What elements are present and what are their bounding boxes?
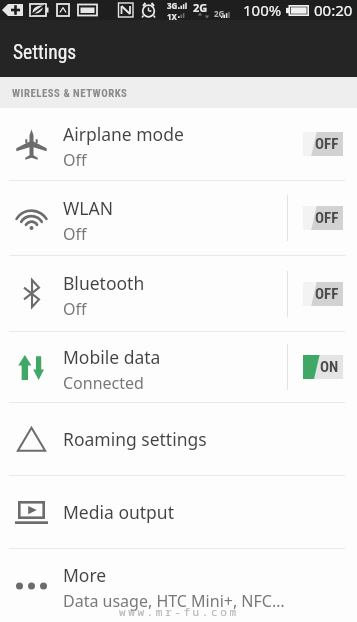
staticText: More bbox=[63, 563, 107, 587]
button[interactable]: Bluetooth bbox=[0, 256, 357, 331]
button[interactable]: Airplane mode bbox=[0, 108, 357, 180]
staticText: WLAN bbox=[63, 196, 113, 220]
staticText: Mobile data bbox=[63, 345, 161, 369]
button[interactable]: WLAN off bbox=[303, 206, 343, 230]
staticText: 00:20 bbox=[314, 0, 353, 20]
button[interactable]: Roaming settings bbox=[0, 403, 357, 475]
staticText: Bluetooth bbox=[63, 271, 145, 295]
button[interactable]: Mobile data on bbox=[303, 355, 343, 379]
button[interactable]: Airplane mode off bbox=[303, 132, 343, 156]
staticText: OFF bbox=[315, 135, 339, 153]
staticText: ON bbox=[320, 358, 339, 376]
staticText: Off bbox=[63, 223, 87, 245]
staticText: OFF bbox=[315, 285, 339, 303]
staticText: www.mr-fu.com bbox=[119, 604, 239, 619]
button[interactable]: Bluetooth off bbox=[303, 282, 343, 306]
button[interactable]: Settings bbox=[0, 20, 357, 77]
button[interactable]: WLAN bbox=[0, 181, 357, 255]
staticText: 2G bbox=[214, 8, 225, 19]
staticText: Airplane mode bbox=[63, 122, 184, 146]
staticText: Off bbox=[63, 149, 87, 171]
staticText: WIRELESS & NETWORKS bbox=[12, 87, 128, 100]
button[interactable]: Media output bbox=[0, 476, 357, 548]
button[interactable]: Mobile data bbox=[0, 332, 357, 402]
staticText: OFF bbox=[315, 209, 339, 227]
button[interactable]: More bbox=[0, 549, 357, 622]
staticText: 100% bbox=[243, 0, 282, 20]
staticText: 1X bbox=[167, 11, 177, 20]
staticText: Connected bbox=[63, 372, 144, 394]
staticText: Media output bbox=[63, 500, 175, 524]
staticText: 2G bbox=[193, 0, 208, 15]
staticText: Roaming settings bbox=[63, 427, 207, 451]
staticText: Data usage, HTC Mini+, NFC… bbox=[63, 590, 285, 612]
staticText: Off bbox=[63, 298, 87, 320]
staticText: Settings bbox=[13, 41, 77, 64]
staticText: 3G bbox=[167, 0, 178, 11]
